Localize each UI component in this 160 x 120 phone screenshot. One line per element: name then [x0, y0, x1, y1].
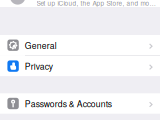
button[interactable]: General	[0, 35, 160, 55]
staticText: Set up iCloud, the App Store, and mo…	[36, 0, 155, 8]
staticText: Privacy	[25, 60, 53, 72]
staticText: Passwords & Accounts	[25, 97, 112, 110]
staticText: General	[25, 39, 57, 51]
button[interactable]: Privacy	[0, 56, 160, 76]
button[interactable]: Passwords & Accounts	[0, 93, 160, 114]
button[interactable]: Set up iCloud, the App Store, and mo…	[0, 0, 160, 7]
